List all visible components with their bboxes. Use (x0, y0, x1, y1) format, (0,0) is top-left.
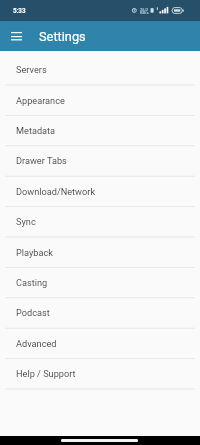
button[interactable]: Casting (0, 267, 200, 297)
button[interactable]: Sync (0, 206, 200, 236)
staticText: Settings (39, 29, 86, 44)
button[interactable]: Advanced (0, 328, 200, 358)
staticText: Sync (16, 216, 36, 227)
staticText: Advanced (16, 338, 57, 349)
button[interactable]: Servers (0, 54, 200, 84)
staticText: Playback (16, 247, 53, 258)
button[interactable]: Metadata (0, 115, 200, 145)
staticText: Servers (16, 64, 47, 75)
button[interactable]: Help / Support (0, 358, 200, 388)
button[interactable]: Open navigation menu (5, 25, 27, 47)
staticText: Download/Network (16, 186, 96, 197)
staticText: Podcast (16, 307, 50, 318)
staticText: 26.0 KB/s (140, 7, 149, 15)
staticText: Metadata (16, 125, 56, 136)
staticText: Appearance (16, 95, 65, 106)
staticText: Help / Support (16, 368, 76, 379)
staticText: Drawer Tabs (16, 155, 67, 166)
button[interactable]: Appearance (0, 85, 200, 115)
staticText: 5:33 (13, 7, 26, 15)
button[interactable]: Download/Network (0, 176, 200, 206)
button[interactable]: Podcast (0, 297, 200, 327)
button[interactable]: Drawer Tabs (0, 145, 200, 175)
button[interactable]: Playback (0, 237, 200, 267)
staticText: Casting (16, 277, 48, 288)
